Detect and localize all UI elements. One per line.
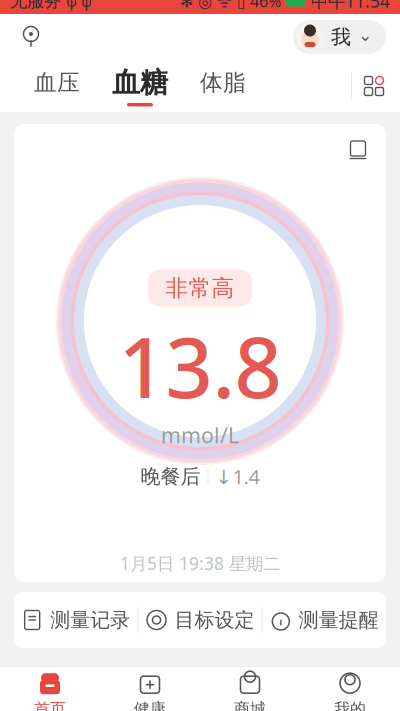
staticText: ↓1.4 bbox=[215, 463, 259, 490]
button[interactable]: 血糖 bbox=[96, 60, 184, 112]
button[interactable]: 首页 bbox=[0, 667, 100, 711]
button[interactable]: 测量记录 bbox=[14, 592, 137, 648]
button[interactable]: 商城 bbox=[200, 667, 300, 711]
staticText: 13.8 bbox=[118, 311, 281, 421]
button[interactable]: 健康 bbox=[100, 667, 200, 711]
staticText: mmol/L bbox=[161, 421, 239, 449]
staticText: ✻ ◎ ᯤ ▯ 46% bbox=[180, 0, 281, 12]
staticText: 1月5日 19:38 星期二 bbox=[120, 552, 280, 575]
staticText: 中午11:54 bbox=[311, 0, 390, 12]
staticText: 无服务 bbox=[10, 0, 61, 12]
staticText: 健康 bbox=[134, 699, 166, 711]
button[interactable]: 更多功能 bbox=[352, 64, 396, 108]
staticText: ⌄ bbox=[358, 25, 373, 45]
button[interactable]: 测量提醒 bbox=[263, 592, 386, 648]
staticText: 我的 bbox=[334, 699, 366, 711]
button[interactable]: 位置 bbox=[14, 20, 48, 54]
staticText: 首页 bbox=[34, 699, 66, 711]
button[interactable]: 编辑 bbox=[340, 132, 376, 168]
staticText: 非常高 bbox=[165, 274, 234, 302]
button[interactable]: 我的 bbox=[300, 667, 400, 711]
staticText: 我 bbox=[331, 25, 351, 49]
staticText: ψ ψ bbox=[66, 0, 92, 11]
button[interactable]: 目标设定 bbox=[138, 592, 262, 648]
button[interactable]: 体脂 bbox=[184, 60, 262, 112]
staticText: 血糖 bbox=[112, 66, 168, 100]
staticText: 体脂 bbox=[200, 69, 246, 97]
staticText: 晚餐后 bbox=[140, 464, 200, 489]
button[interactable]: 我 bbox=[293, 20, 386, 54]
staticText: 测量记录 bbox=[50, 608, 130, 632]
staticText: 商城 bbox=[234, 699, 266, 711]
button[interactable]: 血压 bbox=[18, 60, 96, 112]
staticText: 测量提醒 bbox=[299, 608, 379, 632]
staticText: 血压 bbox=[34, 69, 80, 97]
staticText: 目标设定 bbox=[174, 608, 254, 632]
